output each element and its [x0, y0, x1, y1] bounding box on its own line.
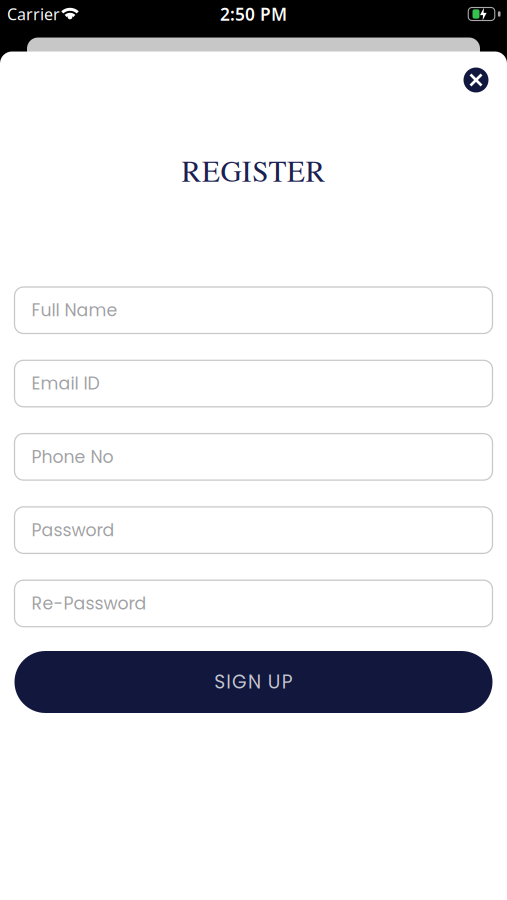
staticText: Full Name	[31, 298, 117, 322]
button[interactable]: Phone No	[14, 434, 492, 480]
staticText: U	[268, 669, 281, 695]
staticText: T	[269, 151, 287, 190]
staticText: S	[252, 151, 268, 190]
staticText: P	[282, 669, 293, 695]
staticText: E	[287, 151, 305, 190]
staticText: Re-Password	[31, 591, 146, 616]
button[interactable]: Full Name	[14, 287, 492, 333]
staticText: Email ID	[31, 371, 99, 396]
staticText: S	[214, 669, 225, 695]
button[interactable]: Re-Password	[14, 580, 492, 627]
staticText: G	[232, 669, 247, 695]
staticText: Password	[31, 518, 114, 542]
staticText: G	[220, 151, 241, 190]
button[interactable]: Close	[463, 67, 488, 92]
staticText: Phone No	[31, 445, 113, 469]
staticText: N	[248, 669, 261, 695]
staticText: R	[305, 151, 325, 190]
button[interactable]: Password	[14, 507, 492, 553]
staticText: I	[226, 669, 231, 695]
staticText: 2:50 PM	[220, 2, 287, 25]
staticText: I	[242, 151, 252, 190]
button[interactable]: S	[14, 651, 492, 713]
staticText: R	[182, 151, 202, 190]
staticText: Carrier	[7, 3, 60, 25]
button[interactable]: Email ID	[14, 360, 492, 407]
staticText: E	[202, 151, 220, 190]
